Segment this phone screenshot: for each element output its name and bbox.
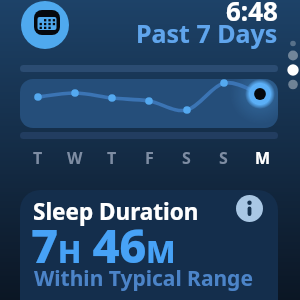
staticText: S	[219, 147, 228, 167]
button[interactable]	[21, 1, 69, 49]
staticText: 6:48	[226, 0, 278, 28]
button[interactable]: Sleep Duration	[20, 190, 278, 300]
button[interactable]	[20, 79, 278, 128]
staticText: Sleep Duration	[33, 196, 199, 227]
staticText: F	[145, 147, 154, 167]
staticText: 7H 46M	[31, 213, 176, 277]
staticText: Within Typical Range	[34, 264, 253, 293]
staticText: S	[182, 147, 191, 167]
staticText: Past 7 Days	[136, 16, 278, 50]
staticText: W	[67, 147, 83, 167]
staticText: T	[107, 147, 117, 167]
staticText: T	[33, 147, 43, 167]
staticText: M	[255, 147, 271, 167]
button[interactable]	[236, 195, 263, 222]
